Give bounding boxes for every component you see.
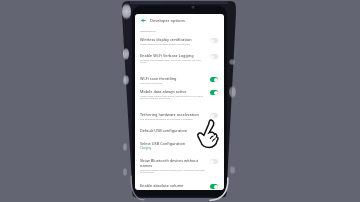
staticText: Always keep mobile data active, even whe…	[140, 94, 207, 100]
button[interactable]: Default USB configuration	[135, 126, 224, 135]
staticText: Use tethering hardware acceleration if a…	[140, 117, 193, 120]
button[interactable]: Select USB Configuration	[135, 139, 224, 152]
staticText: Select USB Configuration	[140, 141, 186, 146]
staticText: Charging	[140, 146, 152, 150]
button[interactable]: Mobile data always active	[135, 87, 224, 102]
button[interactable]: Wi-Fi scan throttling	[135, 74, 224, 86]
staticText: Developer options	[150, 18, 186, 23]
staticText: Enable Wi-Fi Verbose Logging	[140, 53, 194, 58]
staticText: Wireless display certification	[140, 37, 192, 42]
staticText: Bluetooth devices without names (MAC add…	[140, 168, 207, 174]
staticText: Mobile data always active	[140, 89, 187, 94]
staticText: Show options for wireless display certif…	[140, 42, 191, 45]
staticText: Tethering hardware acceleration	[140, 112, 199, 117]
staticText: Enable absolute volume	[140, 183, 184, 188]
button[interactable]: Tethering hardware acceleration	[135, 110, 224, 122]
staticText: NETWORKING	[140, 30, 156, 33]
button[interactable]: Show Bluetooth devices without names	[135, 156, 224, 176]
button[interactable]: Enable absolute volume	[135, 181, 224, 190]
button[interactable]: Navigate up	[135, 14, 224, 27]
staticText: Default USB configuration	[140, 128, 188, 133]
staticText: Wi-Fi scan throttling	[140, 81, 163, 84]
other: Navigate up	[141, 18, 146, 23]
staticText: Show Bluetooth devices without names	[140, 158, 207, 168]
staticText: Increase Wi-Fi logging level, show per S…	[140, 58, 207, 64]
button[interactable]: Wireless display certification	[135, 35, 224, 47]
staticText: Wi-Fi scan throttling	[140, 76, 177, 81]
button[interactable]: Enable Wi-Fi Verbose Logging	[135, 51, 224, 66]
